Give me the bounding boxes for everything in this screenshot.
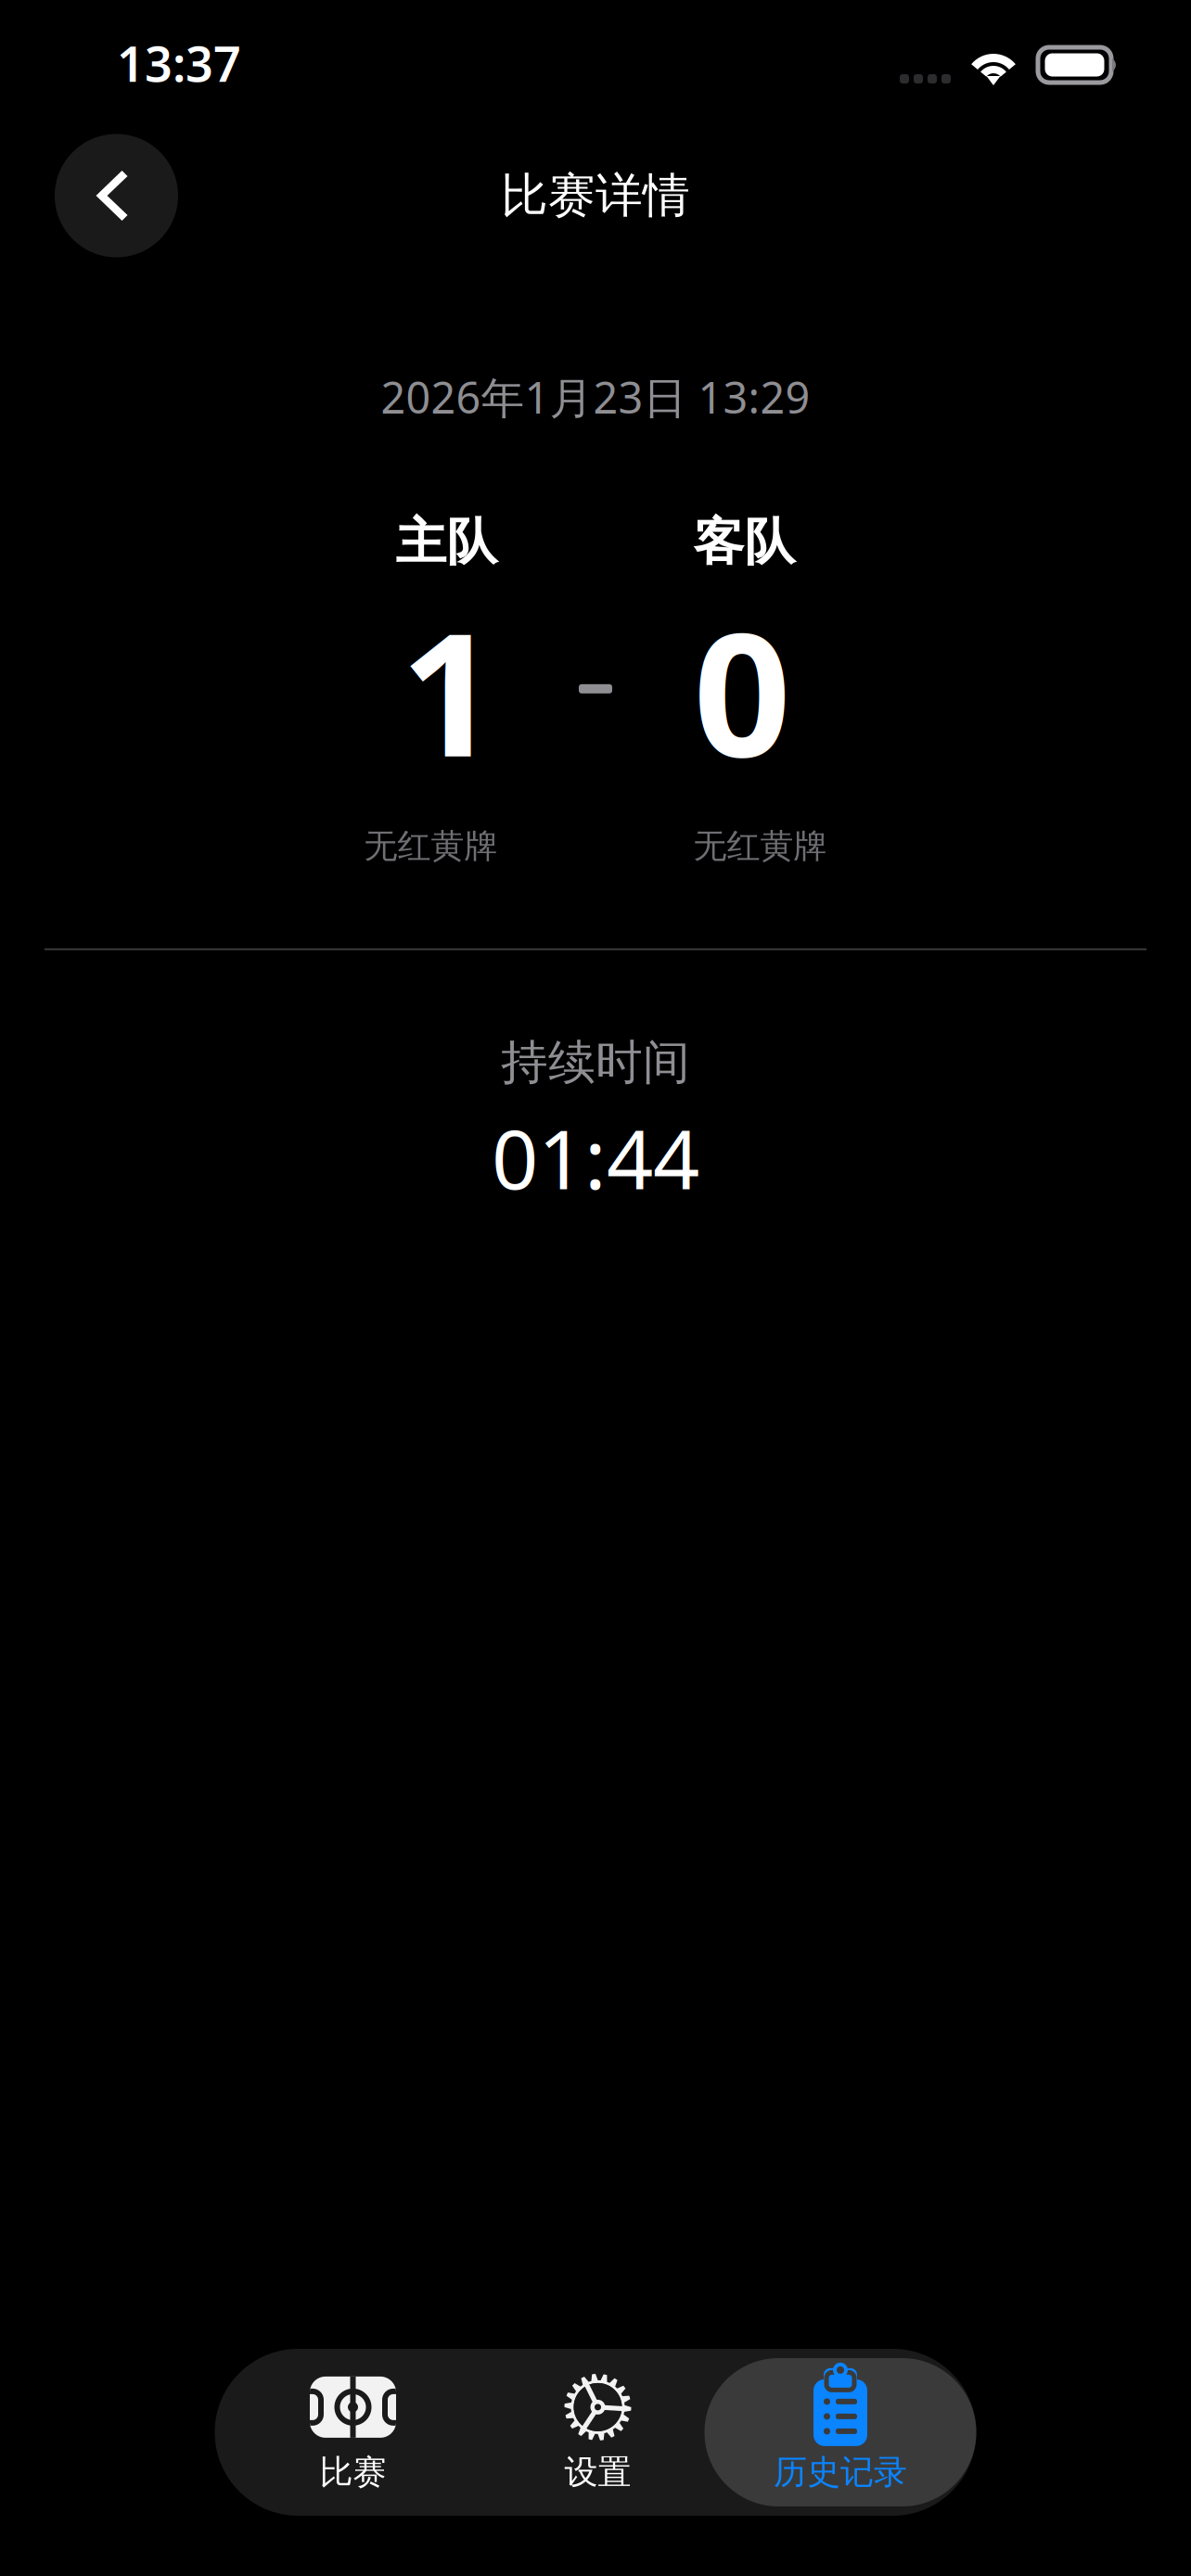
staticText: 01:44 xyxy=(492,1103,699,1212)
staticText: 历史记录 xyxy=(774,2452,907,2493)
staticText: 客队 xyxy=(693,511,795,573)
staticText: 比赛详情 xyxy=(501,167,690,224)
staticText: 13:37 xyxy=(117,31,241,95)
staticText: 持续时间 xyxy=(501,1034,690,1091)
staticText: 比赛 xyxy=(320,2452,386,2493)
button[interactable]: 历史记录 xyxy=(704,2358,976,2506)
staticText: 无红黄牌 xyxy=(693,826,827,867)
staticText: 1 xyxy=(400,577,498,803)
button[interactable]: 返回 xyxy=(55,134,178,257)
staticText: 主队 xyxy=(396,511,498,573)
staticText: 2026年1月23日 13:29 xyxy=(381,368,810,426)
staticText: 0 xyxy=(693,577,791,803)
staticText: 无红黄牌 xyxy=(364,826,498,867)
button[interactable]: 比赛 xyxy=(215,2358,491,2506)
staticText: 设置 xyxy=(564,2452,631,2493)
button[interactable]: 设置 xyxy=(491,2358,704,2506)
